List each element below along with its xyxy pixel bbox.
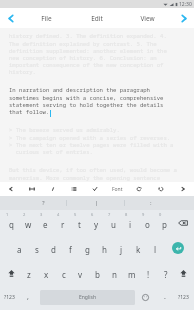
button[interactable]: d [45, 235, 62, 260]
staticText: ! [147, 269, 150, 280]
staticText: Font [112, 186, 123, 193]
button[interactable]: italic [42, 182, 63, 196]
staticText: 7 [108, 212, 111, 217]
staticText: : [150, 199, 152, 207]
button[interactable]: 6 [88, 210, 105, 235]
button[interactable]: redo [128, 182, 150, 196]
staticText: 8 [125, 212, 128, 217]
button[interactable]: check [84, 182, 106, 196]
button[interactable]: 3 [37, 210, 54, 235]
button[interactable]: 9 [139, 210, 156, 235]
button[interactable]: n [106, 260, 123, 285]
staticText: x [44, 269, 49, 280]
staticText: c [62, 269, 66, 280]
button[interactable]: 4 [54, 210, 71, 235]
staticText: In narration and description the paragra… [9, 86, 164, 115]
button[interactable]: font [106, 182, 128, 196]
button[interactable]: s [28, 235, 45, 260]
button[interactable]: Shift [2, 260, 20, 285]
staticText: ? [164, 269, 168, 280]
staticText: 4 [57, 212, 60, 217]
button[interactable]: j [113, 235, 130, 260]
button[interactable]: 7 [105, 210, 122, 235]
staticText: Edit [91, 14, 103, 23]
staticText: 9 [142, 212, 145, 217]
button[interactable]: , [16, 285, 40, 310]
staticText: e [43, 219, 48, 230]
staticText: t [78, 219, 81, 230]
staticText: 6 [91, 212, 94, 217]
staticText: l [154, 244, 157, 255]
button[interactable]: Next [173, 8, 194, 28]
staticText: ?123 [4, 294, 15, 301]
staticText: , [27, 292, 29, 302]
staticText: q [9, 219, 14, 230]
button[interactable]: ! [140, 260, 157, 285]
staticText: k [136, 244, 141, 255]
staticText: a [17, 244, 22, 255]
button[interactable]: ? [16, 196, 70, 210]
staticText: English [79, 294, 97, 301]
staticText: m [128, 269, 136, 280]
button[interactable]: ?123 [2, 285, 16, 310]
button[interactable]: next [172, 182, 194, 196]
staticText: n [112, 269, 117, 280]
button[interactable]: 8 [122, 210, 139, 235]
staticText: s [35, 244, 39, 255]
button[interactable]: View [122, 8, 173, 28]
button[interactable]: a [11, 235, 28, 260]
button[interactable]: Enter [164, 235, 192, 260]
staticText: g [85, 244, 90, 255]
staticText: ?123 [178, 294, 189, 301]
button[interactable]: para [21, 182, 42, 196]
staticText: i [129, 219, 132, 230]
button[interactable]: Previous [0, 8, 21, 28]
staticText: 1 [6, 212, 9, 217]
button[interactable]: ? [157, 260, 174, 285]
button[interactable]: 2 [20, 210, 37, 235]
staticText: 0 [159, 212, 162, 217]
staticText: 2 [23, 212, 26, 217]
button[interactable]: h [96, 235, 113, 260]
button[interactable]: z [20, 260, 38, 285]
button[interactable]: prev [0, 182, 21, 196]
button[interactable]: k [130, 235, 147, 260]
staticText: history defined. 3. The definition expan… [9, 32, 167, 75]
staticText: b [95, 269, 100, 280]
button[interactable]: ?123 [175, 285, 192, 310]
button[interactable]: list [63, 182, 84, 196]
button[interactable]: Edit [71, 8, 122, 28]
button[interactable]: 0 [156, 210, 173, 235]
button[interactable]: 5 [71, 210, 88, 235]
staticText: ? [42, 199, 45, 207]
button[interactable]: File [21, 8, 71, 28]
staticText: 5 [74, 212, 77, 217]
staticText: p [162, 219, 167, 230]
staticText: j [120, 244, 123, 255]
staticText: d [51, 244, 56, 255]
button[interactable]: g [79, 235, 96, 260]
staticText: . [164, 292, 166, 302]
button[interactable]: v [72, 260, 89, 285]
staticText: View [140, 14, 155, 23]
button[interactable]: l [147, 235, 164, 260]
staticText: o [145, 219, 150, 230]
button[interactable]: b [89, 260, 106, 285]
staticText: But this device, if too often used, woul… [9, 166, 177, 181]
button[interactable]: Shift [174, 260, 192, 285]
button[interactable]: 1 [2, 210, 20, 235]
button[interactable]: undo [150, 182, 172, 196]
staticText: | [95, 199, 99, 207]
button[interactable]: x [38, 260, 55, 285]
button[interactable]: English [40, 290, 135, 305]
button[interactable]: f [62, 235, 79, 260]
button[interactable]: c [55, 260, 72, 285]
button[interactable]: | [70, 196, 124, 210]
button[interactable]: m [123, 260, 140, 285]
button[interactable]: Backspace [173, 210, 192, 235]
staticText: File [41, 14, 52, 23]
button[interactable]: Emoji [135, 285, 155, 310]
staticText: 3 [40, 212, 43, 217]
